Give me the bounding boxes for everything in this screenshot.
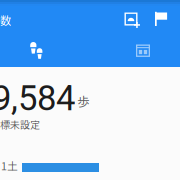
staticText: 1土 [1,158,18,173]
staticText: 歩数 [0,12,11,28]
button[interactable]: 歩数 [0,37,81,65]
staticText: 9,584 [0,78,75,119]
staticText: 目標未設定 [0,117,40,131]
button[interactable]: 体重を記録 [117,5,145,33]
button[interactable]: 目標 [147,5,175,33]
button[interactable]: カレンダー [99,36,180,66]
staticText: 歩 [77,92,90,110]
